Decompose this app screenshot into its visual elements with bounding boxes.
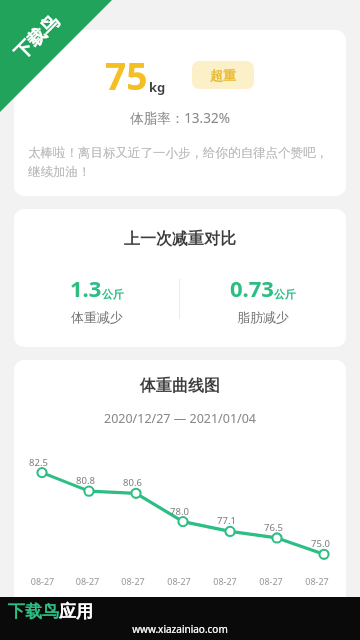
staticText: 体重减少 <box>71 309 123 325</box>
staticText: 1.3 <box>70 273 102 303</box>
button[interactable]: 超重 <box>192 61 254 89</box>
staticText: 体重曲线图 <box>14 376 346 396</box>
staticText: 公斤 <box>102 287 124 301</box>
staticText: 08-27 <box>20 575 65 587</box>
other: Watermark <box>8 601 352 636</box>
staticText: 公斤 <box>274 287 296 301</box>
staticText: 超重 <box>210 67 236 83</box>
staticText: 上一次减重对比 <box>14 229 346 249</box>
staticText: kg <box>149 78 166 96</box>
staticText: 08-27 <box>156 575 202 587</box>
staticText: 体脂率：13.32% <box>28 109 332 127</box>
staticText: 下载鸟 <box>10 10 64 65</box>
button[interactable]: 75 <box>14 30 346 196</box>
button[interactable]: 1.3 <box>14 273 179 325</box>
staticText: 80.8 <box>76 474 95 487</box>
staticText: 0.73 <box>230 273 274 303</box>
staticText: 08-27 <box>65 575 110 587</box>
staticText: 2020/12/27 — 2021/01/04 <box>14 410 346 427</box>
button[interactable]: 上一次减重对比 <box>14 209 346 347</box>
staticText: 75 <box>105 50 148 100</box>
staticText: 08-27 <box>294 575 340 587</box>
staticText: 78.0 <box>170 505 189 518</box>
staticText: 08-27 <box>202 575 248 587</box>
staticText: 76.5 <box>264 521 283 534</box>
staticText: 77.1 <box>217 514 236 527</box>
staticText: 下载鸟 <box>8 601 59 622</box>
button[interactable]: 体重曲线图 <box>14 360 346 620</box>
staticText: www.xiazainiao.com <box>8 622 352 636</box>
staticText: 太棒啦！离目标又近了一小步，给你的自律点个赞吧，继续加油！ <box>28 145 332 180</box>
staticText: 82.5 <box>29 456 48 469</box>
staticText: 08-27 <box>248 575 294 587</box>
button[interactable]: 0.73 <box>180 273 346 325</box>
staticText: 08-27 <box>110 575 156 587</box>
staticText: 应用 <box>59 601 93 622</box>
staticText: 80.6 <box>123 476 142 489</box>
staticText: 脂肪减少 <box>237 309 289 325</box>
staticText: 75.0 <box>311 537 330 550</box>
